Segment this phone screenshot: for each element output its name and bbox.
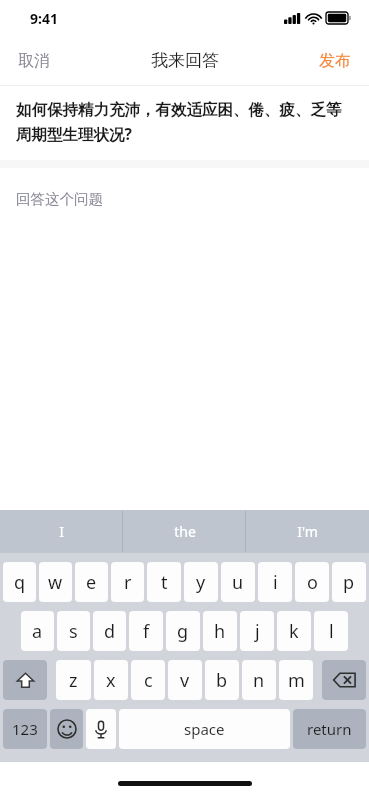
button[interactable]: d <box>93 611 126 651</box>
button[interactable]: s <box>57 611 90 651</box>
button[interactable]: q <box>3 562 36 602</box>
staticText: I <box>59 522 64 541</box>
button[interactable]: v <box>168 660 202 700</box>
staticText: o <box>307 570 318 595</box>
staticText: z <box>69 668 78 693</box>
button[interactable]: 123 <box>3 709 47 749</box>
button[interactable]: space <box>119 709 290 749</box>
staticText: 如何保持精力充沛，有效适应困、倦、疲、乏等周期型生理状况? <box>16 100 353 144</box>
button[interactable]: 发布 <box>301 36 369 85</box>
staticText: j <box>255 619 260 644</box>
staticText: I'm <box>297 522 318 541</box>
button[interactable]: b <box>205 660 239 700</box>
button[interactable]: i <box>258 562 292 602</box>
staticText: 发布 <box>319 51 351 71</box>
button[interactable]: k <box>277 611 311 651</box>
staticText: the <box>174 522 196 541</box>
button[interactable]: o <box>295 562 329 602</box>
staticText: 9:41 <box>30 9 58 28</box>
button[interactable]: g <box>166 611 200 651</box>
button[interactable]: Emoji <box>50 709 83 749</box>
button[interactable]: u <box>221 562 255 602</box>
button[interactable]: the <box>123 510 246 553</box>
button[interactable]: I <box>0 510 123 553</box>
staticText: u <box>232 570 244 595</box>
staticText: y <box>196 570 206 595</box>
staticText: c <box>144 668 153 693</box>
staticText: b <box>216 668 228 693</box>
button[interactable]: 取消 <box>0 36 68 85</box>
button[interactable]: x <box>94 660 128 700</box>
staticText: k <box>289 619 299 644</box>
button[interactable]: y <box>184 562 218 602</box>
staticText: p <box>343 570 355 595</box>
staticText: s <box>69 619 78 644</box>
staticText: 取消 <box>18 51 50 71</box>
button[interactable]: Dictate <box>86 709 116 749</box>
staticText: f <box>143 619 150 644</box>
staticText: 回答这个问题 <box>16 190 103 208</box>
button[interactable]: Shift <box>3 660 47 700</box>
button[interactable]: l <box>314 611 348 651</box>
staticText: m <box>288 668 305 693</box>
staticText: g <box>177 619 189 644</box>
button[interactable]: n <box>242 660 276 700</box>
staticText: n <box>253 668 265 693</box>
staticText: q <box>14 570 26 595</box>
staticText: 我来回答 <box>151 50 219 71</box>
button[interactable]: f <box>129 611 163 651</box>
button[interactable]: Backspace <box>322 660 366 700</box>
button[interactable]: I'm <box>246 510 369 553</box>
staticText: t <box>161 570 168 595</box>
staticText: space <box>184 719 225 739</box>
staticText: return <box>307 719 352 739</box>
staticText: r <box>124 570 132 595</box>
staticText: h <box>214 619 226 644</box>
staticText: i <box>273 570 278 595</box>
staticText: d <box>104 619 116 644</box>
staticText: x <box>106 668 116 693</box>
button[interactable]: c <box>131 660 165 700</box>
staticText: a <box>32 619 43 644</box>
button[interactable]: j <box>240 611 274 651</box>
button[interactable]: e <box>75 562 108 602</box>
button[interactable]: t <box>147 562 181 602</box>
button[interactable]: a <box>21 611 54 651</box>
button[interactable]: m <box>279 660 313 700</box>
staticText: w <box>48 570 63 595</box>
button[interactable]: p <box>332 562 366 602</box>
button[interactable]: h <box>203 611 237 651</box>
staticText: e <box>86 570 97 595</box>
button[interactable]: 回答这个问题 <box>0 168 369 510</box>
button[interactable]: return <box>293 709 366 749</box>
staticText: v <box>180 668 190 693</box>
button[interactable]: r <box>111 562 144 602</box>
button[interactable]: w <box>39 562 72 602</box>
staticText: l <box>329 619 334 644</box>
staticText: 123 <box>12 719 38 739</box>
button[interactable]: z <box>56 660 91 700</box>
